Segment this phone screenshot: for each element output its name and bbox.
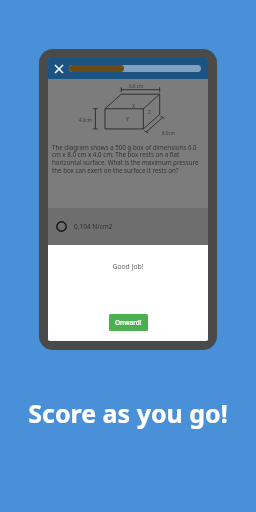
- staticText: Onward!: [115, 318, 142, 327]
- staticText: The diagram shows a 500 g box of dimensi…: [52, 143, 206, 175]
- staticText: 0.104 N/cm2: [74, 222, 113, 231]
- staticText: 6.0 cm: [129, 83, 144, 89]
- staticText: Score as you go!: [0, 396, 256, 430]
- button[interactable]: Onward!: [109, 314, 148, 331]
- staticText: Z: [148, 109, 151, 116]
- staticText: X: [132, 103, 135, 110]
- button[interactable]: Close: [52, 62, 66, 76]
- staticText: 4.0cm: [79, 117, 92, 123]
- staticText: Y: [126, 116, 129, 123]
- staticText: Good Job!: [112, 262, 144, 271]
- button[interactable]: 0.104 N/cm2: [48, 208, 208, 245]
- staticText: 8.0cm: [162, 130, 175, 136]
